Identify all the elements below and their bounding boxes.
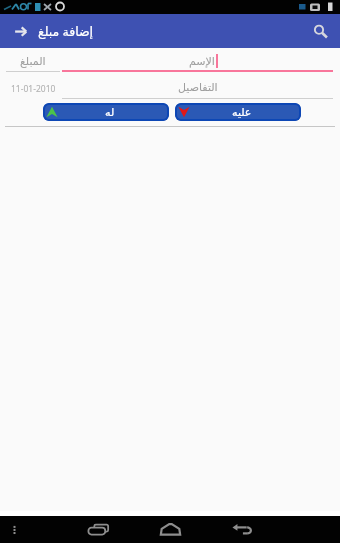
button[interactable]: Back [226,516,258,543]
button[interactable]: Back [8,18,34,44]
button[interactable]: Recents [82,516,114,543]
button[interactable]: عليه [175,103,301,121]
button[interactable]: له [43,103,169,121]
staticText: له [105,106,115,119]
button[interactable]: التفاصيل [62,79,333,103]
button[interactable]: Search [307,18,333,44]
staticText: 11-01-2010 [11,83,56,95]
staticText: الإسم [189,55,215,68]
staticText: عليه [232,106,252,119]
button[interactable]: Menu [2,516,26,543]
staticText: المبلغ [20,55,46,68]
button[interactable]: الإسم [62,48,333,79]
staticText: إضافة مبلغ [38,23,94,40]
button[interactable]: المبلغ [6,48,60,79]
button[interactable]: 11-01-2010 [6,79,60,103]
staticText: التفاصيل [178,81,218,94]
button[interactable]: Home [154,516,186,543]
